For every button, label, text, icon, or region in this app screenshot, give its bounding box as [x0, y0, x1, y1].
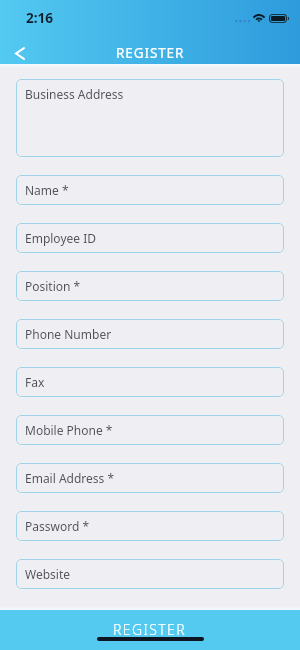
- staticText: Website: [25, 566, 71, 582]
- button[interactable]: Position *: [16, 271, 284, 301]
- staticText: Name *: [25, 182, 69, 198]
- staticText: Password *: [25, 518, 90, 534]
- staticText: REGISTER: [116, 44, 185, 62]
- staticText: REGISTER: [113, 620, 187, 639]
- staticText: Employee ID: [25, 230, 96, 246]
- staticText: 2:16: [26, 8, 54, 27]
- staticText: Phone Number: [25, 326, 112, 342]
- button[interactable]: REGISTER: [0, 610, 300, 650]
- button[interactable]: Phone Number: [16, 319, 284, 349]
- staticText: Position *: [25, 278, 81, 294]
- staticText: Business Address: [25, 86, 124, 102]
- button[interactable]: Name *: [16, 175, 284, 205]
- button[interactable]: Back: [4, 37, 36, 69]
- button[interactable]: Employee ID: [16, 223, 284, 253]
- button[interactable]: Fax: [16, 367, 284, 397]
- button[interactable]: Password *: [16, 511, 284, 541]
- staticText: Email Address *: [25, 470, 115, 486]
- button[interactable]: Business Address: [16, 79, 284, 157]
- staticText: Mobile Phone *: [25, 422, 113, 438]
- button[interactable]: Website: [16, 559, 284, 589]
- button[interactable]: Email Address *: [16, 463, 284, 493]
- button[interactable]: Mobile Phone *: [16, 415, 284, 445]
- staticText: Fax: [25, 374, 45, 390]
